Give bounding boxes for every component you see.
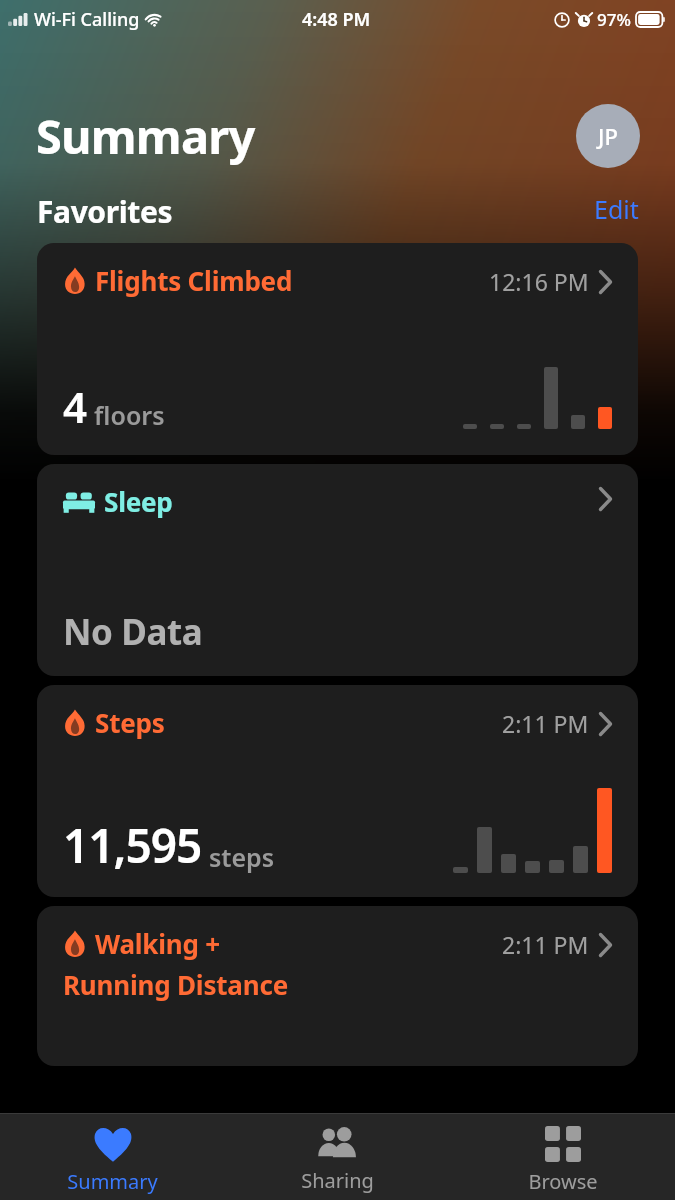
staticText: Wi-Fi Calling	[34, 7, 140, 32]
staticText: Steps	[95, 705, 165, 740]
staticText: 4	[63, 378, 87, 435]
staticText: 11,595	[63, 814, 202, 877]
staticText: 2:11 PM	[502, 929, 589, 960]
staticText: Favorites	[37, 191, 173, 227]
staticText: Edit	[594, 192, 639, 226]
staticText: Walking +	[95, 926, 221, 961]
staticText: 4:48 PM	[302, 7, 371, 32]
button[interactable]: Browse	[450, 1114, 675, 1200]
staticText: steps	[209, 840, 275, 874]
staticText: JP	[598, 121, 618, 151]
button[interactable]: Summary	[0, 1114, 225, 1200]
staticText: Summary	[36, 104, 255, 168]
button[interactable]: Sharing	[225, 1114, 450, 1200]
button[interactable]: Sleep	[37, 464, 638, 676]
staticText: Browse	[528, 1168, 598, 1195]
staticText: Running Distance	[63, 967, 288, 1002]
staticText: Flights Climbed	[95, 263, 293, 298]
button[interactable]: Steps	[37, 685, 638, 897]
staticText: No Data	[63, 608, 203, 656]
staticText: Summary	[67, 1168, 158, 1195]
staticText: 12:16 PM	[489, 266, 589, 297]
button[interactable]: Profile	[576, 104, 640, 168]
button[interactable]: Flights Climbed	[37, 243, 638, 455]
staticText: Sleep	[104, 484, 173, 519]
staticText: 97%	[597, 8, 631, 31]
button[interactable]: Edit	[594, 192, 639, 226]
staticText: floors	[94, 398, 165, 432]
button[interactable]: Walking +	[37, 906, 638, 1066]
staticText: 2:11 PM	[502, 708, 589, 739]
staticText: Sharing	[301, 1167, 374, 1194]
